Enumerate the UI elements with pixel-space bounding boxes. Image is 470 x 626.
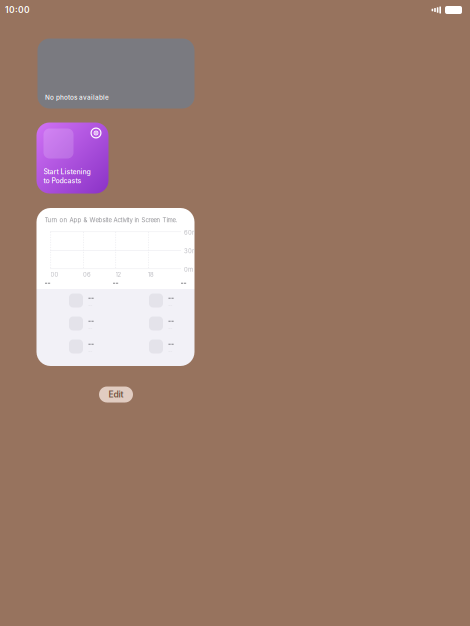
staticText: Turn on App & Website Activity in Screen… (44, 216, 177, 224)
staticText: -- (112, 279, 118, 287)
staticText: 0m (184, 266, 193, 273)
staticText: -- (168, 294, 174, 302)
staticText: to Podcasts (43, 176, 81, 185)
staticText: 60m (184, 229, 197, 236)
staticText: -- (88, 340, 94, 348)
staticText: 30m (184, 248, 197, 255)
staticText: 00 (50, 271, 58, 278)
staticText: 12 (115, 271, 121, 278)
button[interactable]: No photos available (37, 38, 194, 108)
button[interactable]: Turn on App & Website Activity in Screen… (36, 208, 194, 366)
staticText: -- (168, 340, 174, 348)
button[interactable]: Edit (99, 386, 133, 402)
staticText: -- (44, 279, 50, 287)
staticText: No photos available (45, 93, 109, 101)
staticText: Edit (108, 389, 123, 400)
staticText: 18 (148, 271, 154, 278)
staticText: -- (180, 279, 186, 287)
button[interactable]: Start Listening (36, 122, 108, 193)
staticText: -- (168, 317, 174, 325)
staticText: 10:00 (5, 5, 30, 15)
staticText: 06 (83, 271, 91, 278)
staticText: Start Listening (43, 167, 90, 176)
staticText: -- (88, 294, 94, 302)
staticText: -- (88, 317, 94, 325)
